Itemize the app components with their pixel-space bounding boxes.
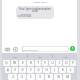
- staticText: B: [48, 75, 50, 79]
- button[interactable]: Camera: [4, 46, 10, 52]
- button[interactable]: S: [12, 67, 18, 73]
- button[interactable]: Apps: [12, 46, 18, 52]
- button[interactable]: Y: [42, 60, 48, 66]
- staticText: X: [21, 75, 23, 79]
- staticText: Text Message: [22, 48, 38, 51]
- staticText: M: [66, 75, 69, 79]
- button[interactable]: R: [27, 60, 34, 66]
- staticText: T: [37, 61, 39, 65]
- button[interactable]: D: [19, 67, 26, 73]
- button[interactable]: U: [49, 60, 55, 66]
- staticText: U: [51, 61, 54, 65]
- staticText: is 9037048: [18, 14, 31, 18]
- button[interactable]: N: [54, 74, 62, 80]
- staticText: Z: [12, 75, 14, 79]
- staticText: L: [70, 68, 72, 72]
- button[interactable]: O: [63, 60, 69, 66]
- button[interactable]: Q: [3, 60, 10, 66]
- staticText: I: [59, 61, 60, 65]
- staticText: K: [62, 68, 64, 72]
- button[interactable]: L: [67, 67, 74, 73]
- staticText: Q: [5, 61, 8, 65]
- staticText: Ok: [38, 55, 42, 58]
- button[interactable]: "Ok": [2, 53, 27, 59]
- button[interactable]: B: [45, 74, 53, 80]
- staticText: O: [65, 61, 68, 65]
- staticText: G: [37, 68, 40, 72]
- button[interactable]: K: [59, 67, 66, 73]
- staticText: H: [45, 68, 48, 72]
- staticText: S: [14, 68, 16, 72]
- button[interactable]: H: [43, 67, 50, 73]
- button[interactable]: M: [63, 74, 71, 80]
- button[interactable]: J: [51, 67, 58, 73]
- staticText: Your Sprint authentication code: [18, 7, 52, 13]
- staticText: F: [30, 68, 32, 72]
- button[interactable]: A: [5, 67, 11, 73]
- staticText: Today 10:44: [33, 1, 47, 4]
- staticText: Y: [44, 61, 46, 65]
- button[interactable]: P: [70, 60, 76, 66]
- staticText: The: [63, 55, 68, 58]
- button[interactable]: Send: [70, 46, 75, 51]
- staticText: N: [57, 75, 60, 79]
- staticText: A: [7, 68, 9, 72]
- button[interactable]: T: [35, 60, 41, 66]
- button[interactable]: Ok: [28, 53, 52, 59]
- button[interactable]: X: [18, 74, 26, 80]
- button[interactable]: I: [56, 60, 62, 66]
- button[interactable]: W: [11, 60, 18, 66]
- button[interactable]: G: [35, 67, 42, 73]
- staticText: V: [39, 75, 41, 79]
- staticText: J: [54, 68, 55, 72]
- staticText: W: [13, 61, 16, 65]
- staticText: "Ok": [12, 55, 18, 58]
- button[interactable]: V: [36, 74, 44, 80]
- staticText: C: [30, 75, 32, 79]
- button[interactable]: Your Sprint authentication code: [16, 6, 54, 19]
- button[interactable]: Text Message: [20, 46, 69, 52]
- staticText: R: [30, 61, 32, 65]
- button[interactable]: E: [19, 60, 26, 66]
- staticText: D: [21, 68, 24, 72]
- button[interactable]: F: [27, 67, 34, 73]
- button[interactable]: The: [53, 53, 77, 59]
- button[interactable]: Z: [8, 74, 17, 80]
- button[interactable]: C: [27, 74, 35, 80]
- staticText: P: [72, 61, 74, 65]
- staticText: E: [22, 61, 24, 65]
